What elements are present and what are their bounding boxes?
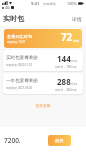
staticText: 分钟 bbox=[71, 82, 77, 86]
staticText: 4G bbox=[5, 5, 10, 10]
staticText: 288 bbox=[57, 76, 71, 87]
staticText: 有效期至 2021.06.30 bbox=[6, 86, 33, 90]
staticText: 套餐外实时包 bbox=[7, 34, 33, 39]
staticText: 144 bbox=[57, 53, 71, 64]
staticText: 实时包 bbox=[3, 14, 24, 23]
staticText: 7200. bbox=[4, 136, 21, 145]
button[interactable]: 购买 bbox=[48, 135, 71, 146]
staticText: 实时包套餐剩余 bbox=[6, 55, 39, 61]
staticText: 购买 bbox=[55, 138, 64, 143]
staticText: 分钟 bbox=[71, 59, 77, 63]
staticText: 更多套餐 bbox=[35, 103, 51, 108]
staticText: 100% bbox=[67, 1, 77, 6]
staticText: 分钟 bbox=[73, 39, 79, 43]
button[interactable]: 更多套餐 bbox=[0, 101, 86, 109]
staticText: 有效期至 2020.12.31 bbox=[6, 63, 33, 67]
button[interactable]: 详情 bbox=[72, 16, 82, 22]
staticText: 一年包套餐剩余 bbox=[6, 78, 39, 84]
staticText: 72 bbox=[61, 31, 73, 44]
staticText: 中国移动 bbox=[43, 2, 56, 6]
button[interactable]: 实时包套餐剩余 bbox=[3, 50, 83, 71]
staticText: 9:41 bbox=[31, 1, 40, 7]
staticText: 有效期至 12.31 bbox=[7, 40, 26, 44]
button[interactable]: 一年包套餐剩余 bbox=[3, 73, 83, 94]
staticText: 总时长：180分钟 bbox=[55, 65, 77, 69]
staticText: 总时长：360分钟 bbox=[55, 88, 77, 92]
button[interactable]: 套餐外实时包 bbox=[4, 29, 82, 48]
